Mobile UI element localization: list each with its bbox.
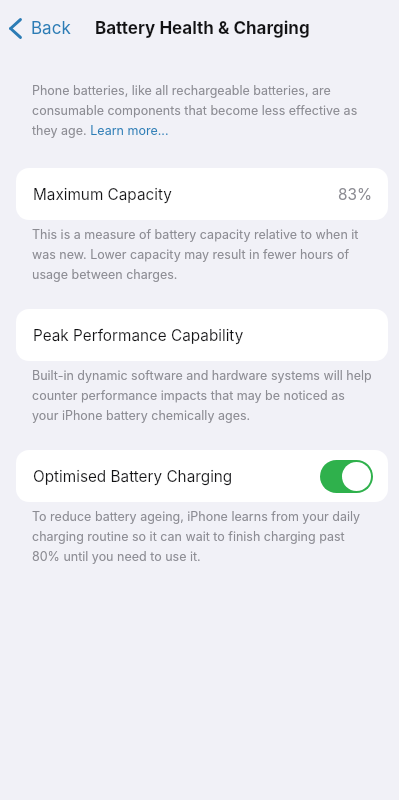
button[interactable]: Back [5, 10, 75, 47]
button[interactable]: Peak Performance Capability [16, 309, 388, 361]
staticText: Built-in dynamic software and hardware s… [32, 364, 374, 424]
staticText: To reduce battery ageing, iPhone learns … [32, 505, 374, 565]
staticText: 83% [338, 185, 372, 204]
staticText: Battery Health & Charging [95, 18, 310, 39]
button[interactable]: Optimised Battery Charging, on [320, 460, 373, 493]
staticText: Optimised Battery Charging [33, 467, 233, 486]
staticText: Back [31, 18, 71, 39]
button[interactable]: Maximum Capacity [16, 168, 388, 220]
staticText: Phone batteries, like all rechargeable b… [32, 79, 374, 139]
button[interactable]: Optimised Battery Charging [16, 450, 388, 502]
staticText: Maximum Capacity [33, 185, 172, 204]
staticText: This is a measure of battery capacity re… [32, 223, 374, 283]
staticText: Peak Performance Capability [33, 326, 244, 345]
